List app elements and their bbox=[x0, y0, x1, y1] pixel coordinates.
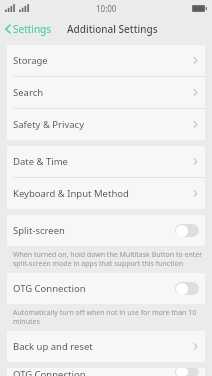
staticText: Storage bbox=[13, 54, 48, 67]
staticText: When turned on, hold down the Multitask … bbox=[13, 250, 203, 268]
staticText: Date & Time bbox=[13, 155, 68, 168]
button[interactable]: Keyboard & Input Method bbox=[7, 178, 205, 209]
staticText: OTG Connection bbox=[13, 368, 86, 376]
button[interactable]: Toggle switch, off bbox=[175, 224, 199, 237]
staticText: Safety & Privacy bbox=[13, 118, 85, 131]
button[interactable]: Search bbox=[7, 77, 205, 108]
button[interactable]: Split-screen bbox=[7, 215, 205, 246]
button[interactable]: Safety & Privacy bbox=[7, 109, 205, 140]
button[interactable]: Settings bbox=[0, 18, 59, 40]
staticText: 10:00 bbox=[96, 3, 117, 14]
staticText: Settings bbox=[13, 22, 52, 36]
staticText: Split-screen bbox=[13, 224, 65, 237]
button[interactable]: Toggle switch, off bbox=[175, 282, 199, 295]
button[interactable]: OTG Connection bbox=[7, 273, 205, 304]
staticText: Automatically turn off when not in use f… bbox=[13, 308, 203, 326]
staticText: Back up and reset bbox=[13, 340, 93, 353]
staticText: Keyboard & Input Method bbox=[13, 187, 129, 200]
button[interactable]: OTG Connection bbox=[7, 368, 205, 376]
button[interactable]: Back up and reset bbox=[7, 331, 205, 362]
button[interactable]: Toggle switch, off bbox=[175, 368, 199, 376]
staticText: Search bbox=[13, 86, 44, 99]
button[interactable]: Date & Time bbox=[7, 146, 205, 177]
staticText: Additional Settings bbox=[67, 22, 158, 36]
button[interactable]: Storage bbox=[7, 45, 205, 76]
staticText: OTG Connection bbox=[13, 282, 86, 295]
